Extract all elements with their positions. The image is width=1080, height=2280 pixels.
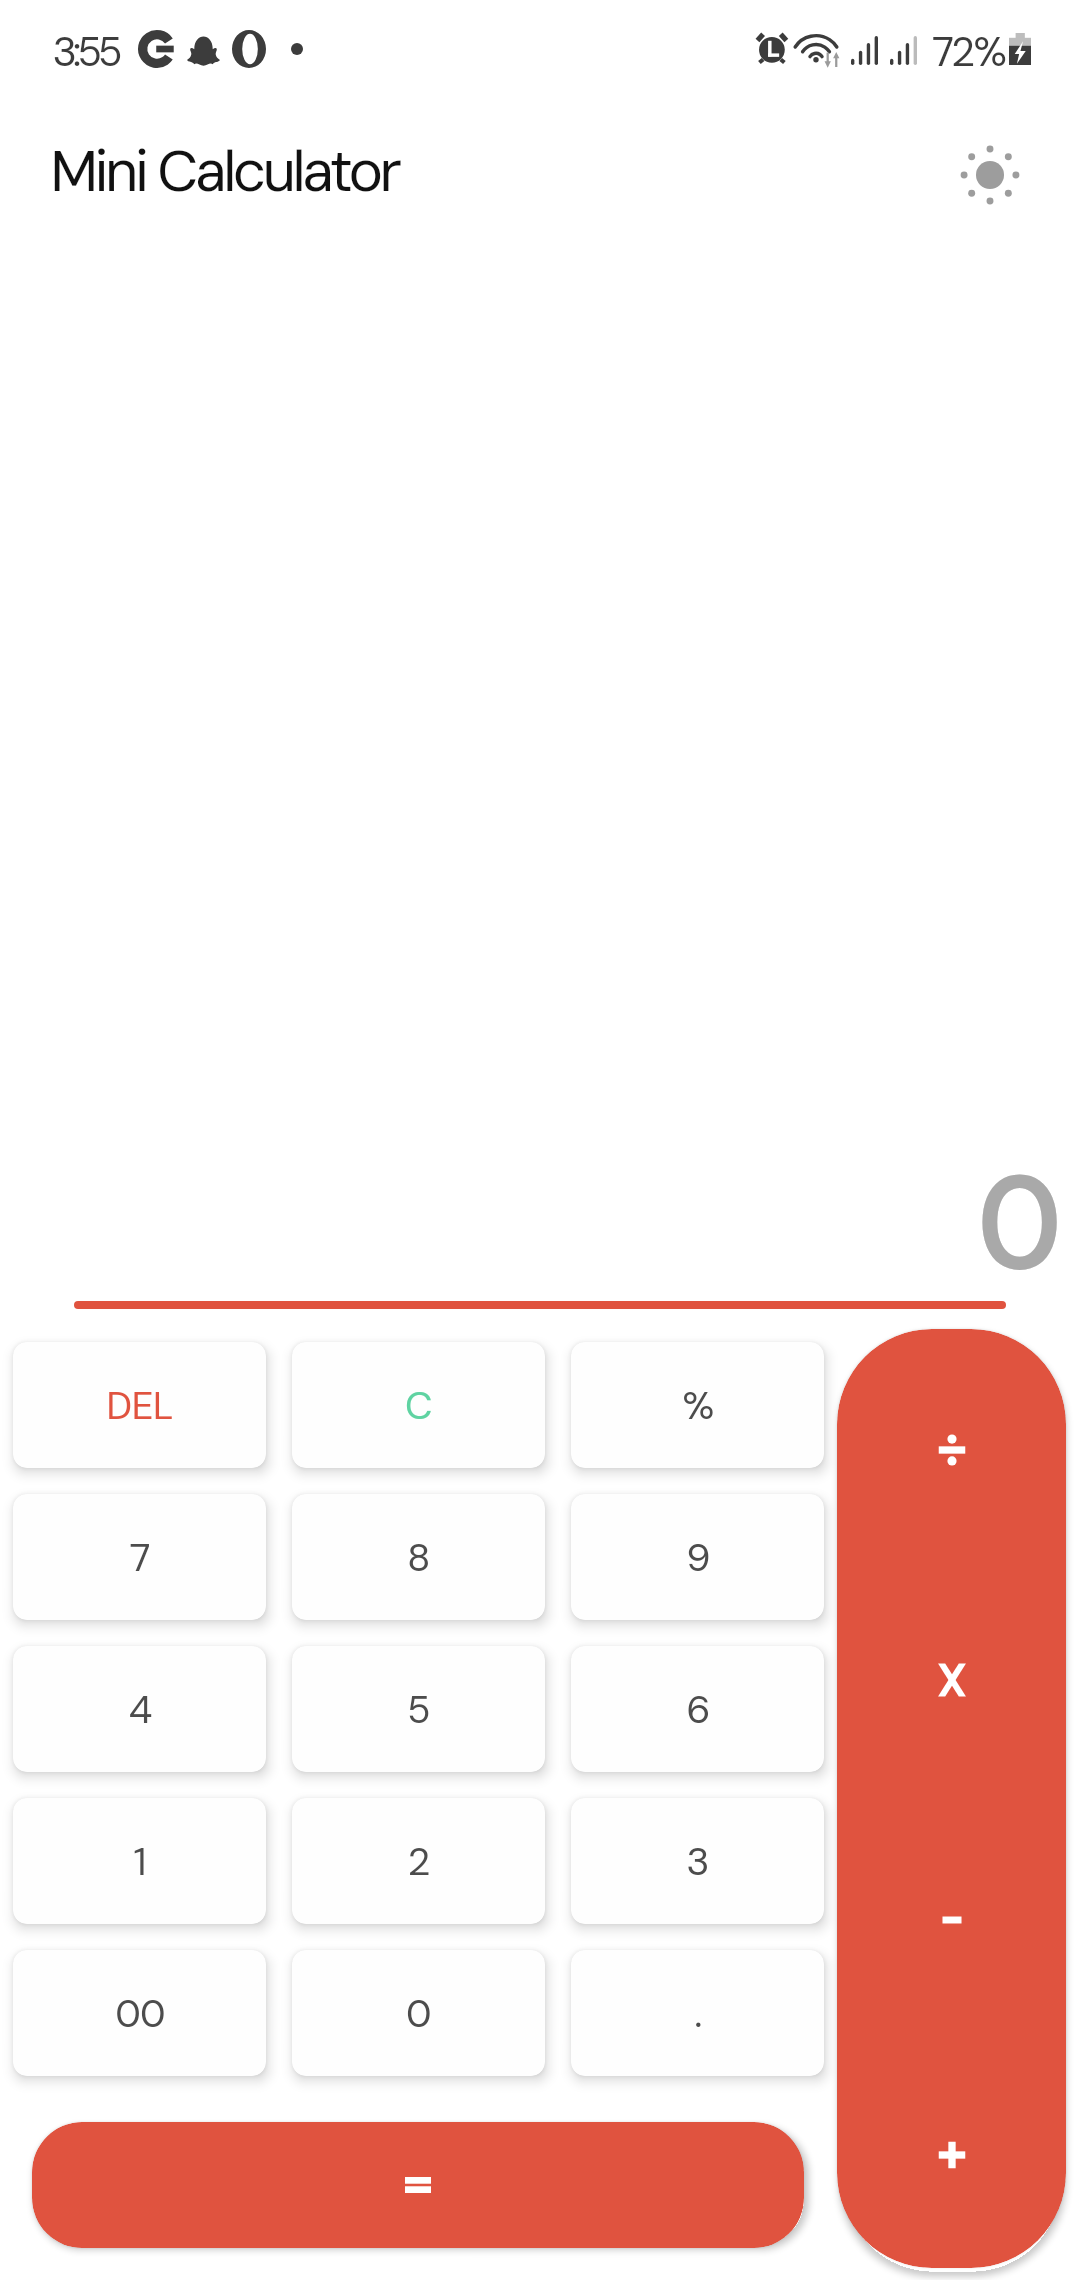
- button[interactable]: Multiply: [837, 1563, 1066, 1798]
- button[interactable]: Divide: [837, 1329, 1066, 1563]
- button[interactable]: 2: [292, 1798, 545, 1924]
- staticText: 2: [407, 1836, 430, 1887]
- button[interactable]: 0: [292, 1950, 545, 2076]
- staticText: 00: [115, 1988, 165, 2039]
- staticText: Mini Calculator: [50, 133, 399, 209]
- staticText: 0: [978, 1141, 1061, 1286]
- staticText: .: [694, 1988, 702, 2039]
- staticText: 1: [133, 1836, 146, 1887]
- staticText: 8: [407, 1532, 430, 1583]
- staticText: C: [405, 1380, 432, 1431]
- staticText: 3: [686, 1836, 709, 1887]
- staticText: 5: [407, 1684, 430, 1735]
- button[interactable]: C: [292, 1342, 545, 1468]
- staticText: 72%: [932, 25, 1005, 78]
- staticText: 6: [686, 1684, 710, 1735]
- button[interactable]: Add: [837, 2033, 1066, 2268]
- staticText: 0: [406, 1988, 431, 2039]
- button[interactable]: 5: [292, 1646, 545, 1772]
- button[interactable]: [32, 2122, 804, 2248]
- button[interactable]: 1: [13, 1798, 266, 1924]
- staticText: 3:55: [52, 25, 119, 78]
- button[interactable]: .: [571, 1950, 824, 2076]
- button[interactable]: 00: [13, 1950, 266, 2076]
- button[interactable]: 6: [571, 1646, 824, 1772]
- button[interactable]: Toggle theme: [942, 127, 1038, 223]
- button[interactable]: 8: [292, 1494, 545, 1620]
- staticText: 4: [128, 1684, 152, 1735]
- button[interactable]: Subtract: [837, 1798, 1066, 2033]
- button[interactable]: 9: [571, 1494, 824, 1620]
- staticText: 7: [129, 1532, 150, 1583]
- button[interactable]: DEL: [13, 1342, 266, 1468]
- staticText: 9: [686, 1532, 710, 1583]
- button[interactable]: %: [571, 1342, 824, 1468]
- button[interactable]: 3: [571, 1798, 824, 1924]
- staticText: DEL: [106, 1380, 173, 1431]
- staticText: %: [682, 1380, 714, 1431]
- button[interactable]: 4: [13, 1646, 266, 1772]
- button[interactable]: 7: [13, 1494, 266, 1620]
